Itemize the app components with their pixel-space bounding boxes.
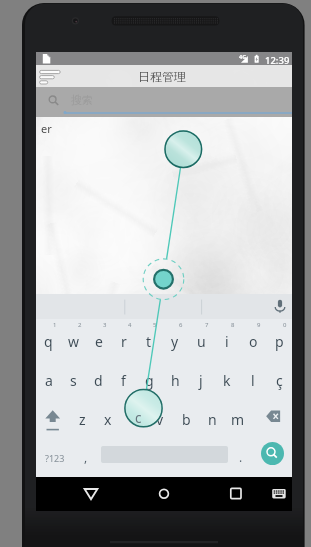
button[interactable]: d: [86, 358, 111, 397]
button[interactable]: Back: [74, 477, 108, 511]
staticText: j: [199, 371, 203, 390]
button[interactable]: Home: [147, 477, 181, 511]
button[interactable]: j: [188, 358, 214, 397]
staticText: a: [45, 371, 53, 390]
staticText: b: [182, 410, 191, 429]
button[interactable]: c: [121, 397, 147, 436]
button[interactable]: k: [214, 358, 240, 397]
staticText: w: [68, 332, 80, 351]
button[interactable]: 6: [162, 319, 188, 358]
button[interactable]: Recent apps: [219, 477, 253, 511]
staticText: c: [131, 410, 138, 429]
button[interactable]: 8: [214, 319, 240, 358]
button[interactable]: 0: [266, 319, 292, 358]
button[interactable]: Backspace: [251, 397, 292, 436]
staticText: 8: [231, 321, 235, 329]
staticText: er: [41, 121, 52, 136]
button[interactable]: Shift: [36, 397, 69, 436]
button[interactable]: Voice input: [270, 294, 290, 319]
button[interactable]: 1: [36, 319, 61, 358]
staticText: h: [171, 371, 180, 390]
staticText: g: [145, 371, 154, 390]
staticText: ç: [276, 371, 283, 390]
button[interactable]: Search: [261, 442, 284, 465]
button[interactable]: s: [61, 358, 86, 397]
button[interactable]: ,: [74, 436, 98, 475]
button[interactable]: b: [173, 397, 199, 436]
staticText: 7: [205, 321, 209, 329]
staticText: ?123: [45, 452, 65, 464]
staticText: q: [44, 332, 53, 351]
staticText: 4G: [239, 53, 247, 60]
staticText: z: [79, 410, 86, 429]
button[interactable]: ?123: [36, 436, 74, 475]
staticText: p: [275, 332, 284, 351]
button[interactable]: 9: [240, 319, 266, 358]
button[interactable]: z: [69, 397, 95, 436]
button[interactable]: .: [229, 436, 253, 475]
staticText: 5: [153, 321, 157, 329]
button[interactable]: v: [147, 397, 173, 436]
button[interactable]: f: [111, 358, 136, 397]
staticText: 2: [78, 321, 82, 329]
button[interactable]: a: [36, 358, 61, 397]
button[interactable]: g: [136, 358, 162, 397]
button[interactable]: Hide keyboard: [264, 477, 292, 511]
staticText: v: [156, 410, 164, 429]
button[interactable]: 5: [136, 319, 162, 358]
staticText: x: [104, 410, 112, 429]
staticText: 4: [128, 321, 132, 329]
staticText: l: [251, 371, 255, 390]
staticText: 搜索: [71, 93, 93, 107]
staticText: d: [94, 371, 103, 390]
staticText: u: [197, 332, 206, 351]
staticText: 9: [257, 321, 261, 329]
button[interactable]: 2: [61, 319, 86, 358]
button[interactable]: 7: [188, 319, 214, 358]
staticText: 0: [283, 321, 287, 329]
staticText: n: [208, 410, 217, 429]
staticText: i: [225, 332, 229, 351]
staticText: ,: [84, 449, 88, 465]
staticText: r: [121, 332, 127, 351]
staticText: s: [70, 371, 77, 390]
staticText: o: [249, 332, 258, 351]
staticText: f: [121, 371, 126, 390]
staticText: 6: [179, 321, 183, 329]
button[interactable]: n: [199, 397, 225, 436]
staticText: 1: [53, 321, 57, 329]
staticText: k: [223, 371, 231, 390]
staticText: 12:39: [265, 54, 290, 67]
staticText: 3: [103, 321, 107, 329]
button[interactable]: 3: [86, 319, 111, 358]
staticText: 日程管理: [138, 69, 186, 84]
button[interactable]: x: [95, 397, 121, 436]
staticText: e: [95, 332, 103, 351]
staticText: t: [146, 332, 152, 351]
staticText: m: [231, 410, 245, 429]
button[interactable]: ç: [266, 358, 292, 397]
staticText: y: [171, 332, 179, 351]
button[interactable]: l: [240, 358, 266, 397]
staticText: .: [239, 449, 243, 465]
staticText: c: [135, 409, 142, 427]
button[interactable]: h: [162, 358, 188, 397]
button[interactable]: m: [225, 397, 251, 436]
button[interactable]: 4: [111, 319, 136, 358]
button[interactable]: Sort: [36, 65, 62, 87]
